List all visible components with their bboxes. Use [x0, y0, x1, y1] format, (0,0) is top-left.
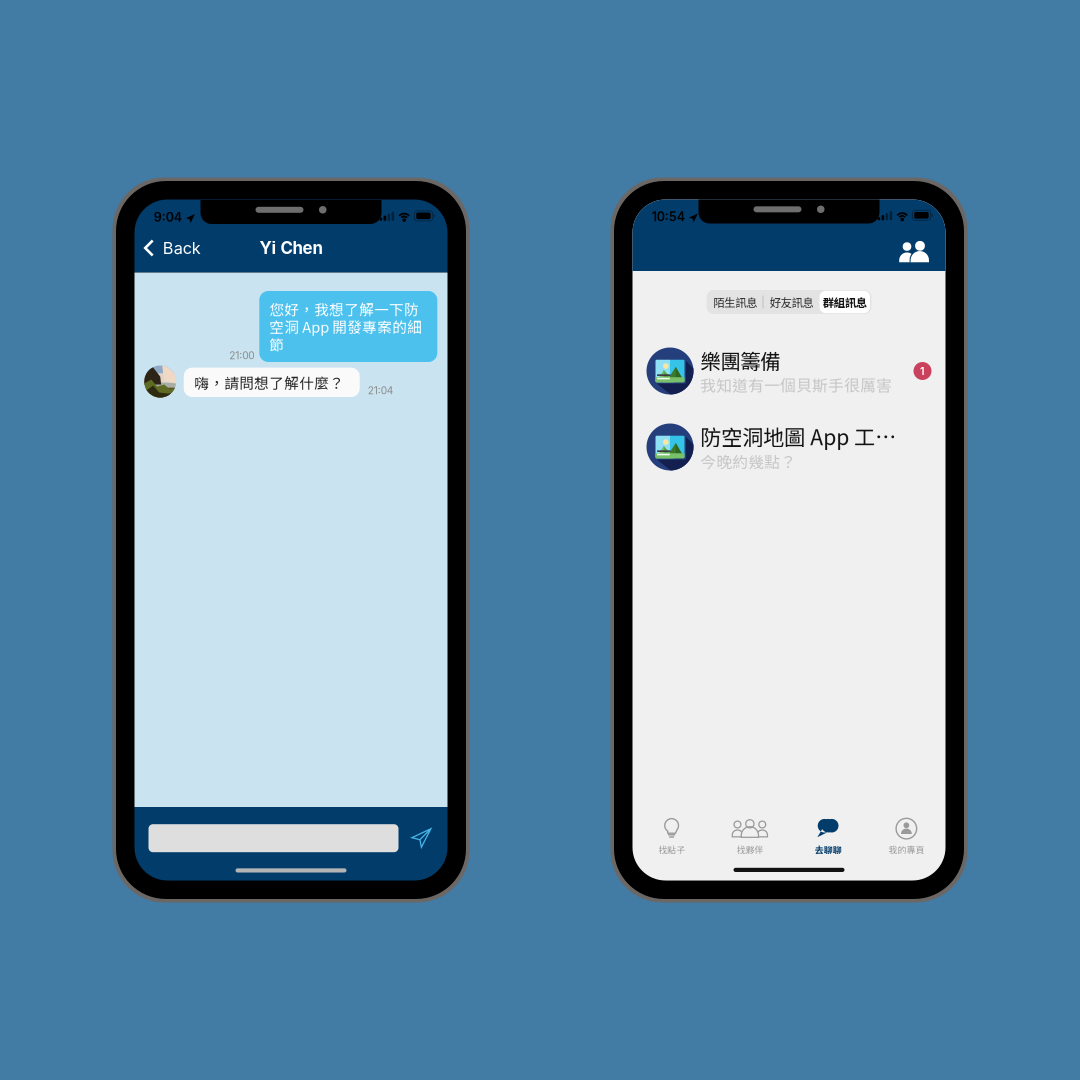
staticText: 找點子: [658, 844, 685, 855]
button[interactable]: 陌生訊息: [708, 291, 762, 313]
staticText: 陌生訊息: [713, 295, 757, 309]
staticText: 1: [920, 365, 925, 377]
staticText: 樂團籌備: [700, 348, 780, 373]
button[interactable]: 找夥伴: [711, 816, 789, 856]
staticText: 去聊聊: [815, 844, 842, 855]
staticText: 21:00: [229, 350, 254, 361]
button[interactable]: 我的專頁: [867, 816, 945, 856]
staticText: Yi Chen: [259, 239, 322, 257]
staticText: 9:04: [154, 210, 182, 224]
button[interactable]: Friends: [888, 228, 945, 267]
button[interactable]: Send: [405, 822, 438, 855]
staticText: 今晚約幾點？: [700, 451, 796, 471]
staticText: 我知道有一個貝斯手很厲害: [700, 375, 892, 394]
staticText: 10:54: [652, 210, 685, 223]
staticText: 好友訊息: [769, 295, 813, 309]
button[interactable]: 防空洞地圖 App 工…: [632, 423, 945, 471]
button[interactable]: 群組訊息: [819, 291, 870, 313]
staticText: 我的專頁: [888, 844, 924, 855]
staticText: 嗨，請問想了解什麼？: [194, 373, 344, 391]
staticText: 找夥伴: [736, 844, 763, 855]
button[interactable]: 好友訊息: [763, 291, 819, 313]
button[interactable]: Back: [134, 226, 201, 270]
staticText: Back: [163, 239, 201, 257]
staticText: 您好，我想了解一下防空洞 App 開發專案的細節: [269, 300, 422, 353]
staticText: 群組訊息: [823, 295, 867, 309]
button[interactable]: 找點子: [632, 816, 711, 856]
button[interactable]: 樂團籌備: [632, 347, 945, 395]
staticText: 21:04: [368, 385, 394, 396]
staticText: 防空洞地圖 App 工…: [700, 423, 896, 449]
button[interactable]: 去聊聊: [789, 816, 867, 856]
